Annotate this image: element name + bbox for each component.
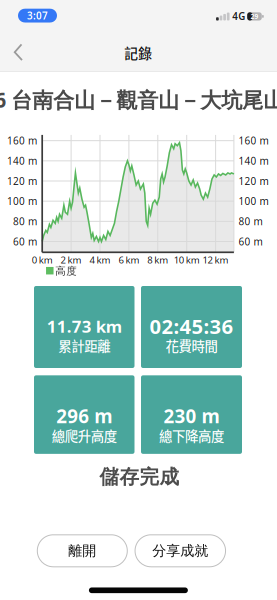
- staticText: 100 m: [7, 194, 37, 208]
- staticText: 12 km: [203, 253, 229, 266]
- staticText: 6 台南合山－觀音山－大坑尾山: [0, 85, 277, 114]
- staticText: 3:07: [27, 9, 48, 22]
- staticText: 80 m: [238, 214, 262, 228]
- staticText: 2 km: [61, 253, 82, 266]
- staticText: 0 km: [32, 253, 53, 266]
- staticText: 分享成就: [152, 542, 208, 560]
- staticText: 6 km: [118, 253, 139, 266]
- staticText: 60 m: [238, 235, 262, 248]
- staticText: 120 m: [7, 174, 37, 188]
- staticText: 160 m: [238, 134, 268, 147]
- button[interactable]: [0, 0, 277, 600]
- staticText: 記錄: [124, 42, 152, 62]
- staticText: 8 km: [147, 253, 168, 266]
- staticText: 140 m: [7, 154, 37, 168]
- staticText: 離開: [68, 542, 96, 560]
- staticText: 儲存完成: [99, 465, 179, 489]
- staticText: 296 m: [56, 403, 112, 429]
- staticText: 60 m: [13, 235, 37, 248]
- staticText: 11.73 km: [47, 315, 122, 338]
- button[interactable]: 離開: [37, 535, 127, 567]
- staticText: 100 m: [238, 194, 268, 208]
- staticText: 230 m: [163, 403, 219, 429]
- staticText: 160 m: [7, 134, 37, 147]
- button[interactable]: 分享成就: [135, 535, 226, 567]
- staticText: 累計距離: [58, 336, 110, 355]
- staticText: 29: [250, 12, 258, 21]
- staticText: 140 m: [238, 154, 268, 168]
- staticText: 80 m: [13, 214, 37, 228]
- staticText: 花費時間: [165, 336, 217, 355]
- staticText: 02:45:36: [149, 312, 233, 340]
- staticText: 總爬升高度: [52, 426, 117, 445]
- staticText: 120 m: [238, 174, 268, 188]
- staticText: 4 km: [89, 253, 110, 266]
- staticText: 高度: [55, 264, 77, 277]
- staticText: 10 km: [174, 253, 200, 266]
- staticText: 4G: [232, 9, 245, 23]
- staticText: 總下降高度: [159, 426, 224, 445]
